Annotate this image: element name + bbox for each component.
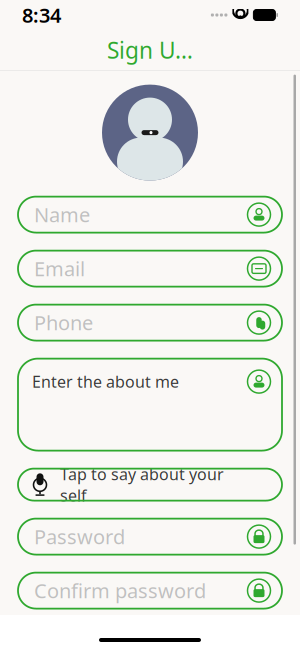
button[interactable]: Tap to say about your self — [18, 469, 282, 501]
button[interactable]: Edit profile photo — [102, 85, 198, 181]
staticText: Confirm password — [34, 577, 206, 604]
button[interactable]: Password — [18, 519, 282, 555]
button[interactable]: Email — [18, 251, 282, 287]
staticText: Sign U… — [107, 35, 193, 65]
button[interactable]: Enter the about me — [18, 359, 282, 451]
staticText: Enter the about me — [32, 371, 179, 392]
staticText: 8:34 — [22, 2, 61, 28]
staticText: Phone — [34, 309, 93, 336]
staticText: Tap to say about your self — [60, 463, 224, 506]
button[interactable]: Name — [18, 197, 282, 233]
staticText: Password — [34, 523, 125, 550]
button[interactable]: Confirm password — [18, 573, 282, 609]
staticText: Email — [34, 255, 85, 282]
staticText: Name — [34, 201, 90, 228]
button[interactable]: Phone — [18, 305, 282, 341]
